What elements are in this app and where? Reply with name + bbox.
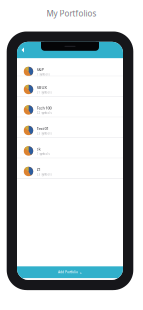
- staticText: 23 symbols: [37, 173, 52, 176]
- staticText: 1 symbols: [37, 73, 50, 76]
- button[interactable]: Add Portfolio: [17, 266, 123, 278]
- staticText: Tech100: [37, 105, 52, 110]
- staticText: My Portfolios: [46, 8, 96, 19]
- staticText: 22 symbols: [37, 111, 52, 115]
- button[interactable]: tk: [17, 138, 123, 158]
- staticText: 23 symbols: [37, 132, 52, 135]
- staticText: S&P: [37, 67, 44, 72]
- button[interactable]: Back: [17, 45, 28, 55]
- button[interactable]: S&P: [17, 58, 123, 76]
- staticText: SBUX: [37, 85, 47, 90]
- staticText: 1 symbols: [37, 152, 50, 156]
- staticText: tk: [37, 146, 41, 151]
- staticText: Test01: [37, 126, 49, 131]
- staticText: Z1: [37, 167, 41, 172]
- button[interactable]: SBUX: [17, 76, 123, 97]
- staticText: +: [80, 270, 82, 275]
- button[interactable]: Tech100: [17, 97, 123, 117]
- button[interactable]: Test01: [17, 117, 123, 138]
- staticText: Add Portfolio: [58, 270, 78, 274]
- staticText: 21 symbols: [37, 91, 52, 94]
- button[interactable]: Z1: [17, 158, 123, 179]
